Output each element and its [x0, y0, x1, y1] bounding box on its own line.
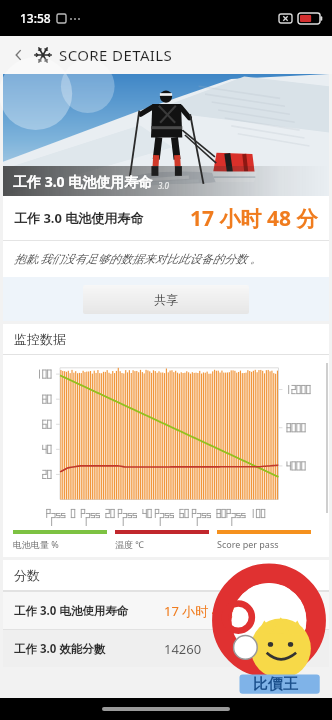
staticText: 比價王 [253, 675, 298, 694]
staticText: 共享 [154, 292, 178, 307]
staticText: 分数 [14, 567, 40, 583]
staticText: 电池电量 % [13, 538, 59, 550]
staticText: 14260 [164, 640, 202, 658]
staticText: 17 小时 48 分 [190, 204, 318, 233]
staticText: 17 小时 48 分 [164, 602, 243, 620]
staticText: 工作 3.0 效能分數 [14, 641, 106, 657]
staticText: 温度 ℃ [115, 538, 145, 550]
staticText: SCORE DETAILS [59, 45, 173, 65]
button[interactable]: 工作 3.0 电池使用寿命 [3, 592, 329, 629]
staticText: 3.0 [158, 180, 169, 191]
staticText: 监控数据 [14, 331, 66, 347]
staticText: 工作 3.0 电池使用寿命 [13, 172, 153, 191]
button[interactable]: 共享 [83, 285, 249, 314]
staticText: 抱歉,我们没有足够的数据来对比此设备的分数 。 [14, 251, 262, 267]
staticText: 工作 3.0 电池使用寿命 [14, 209, 144, 227]
staticText: 工作 3.0 电池使用寿命 [14, 603, 129, 619]
staticText: Score per pass [217, 538, 279, 550]
staticText: 13:58 [20, 10, 51, 26]
button[interactable]: 工作 3.0 效能分數 [3, 630, 329, 667]
button[interactable]: Back [4, 40, 34, 70]
